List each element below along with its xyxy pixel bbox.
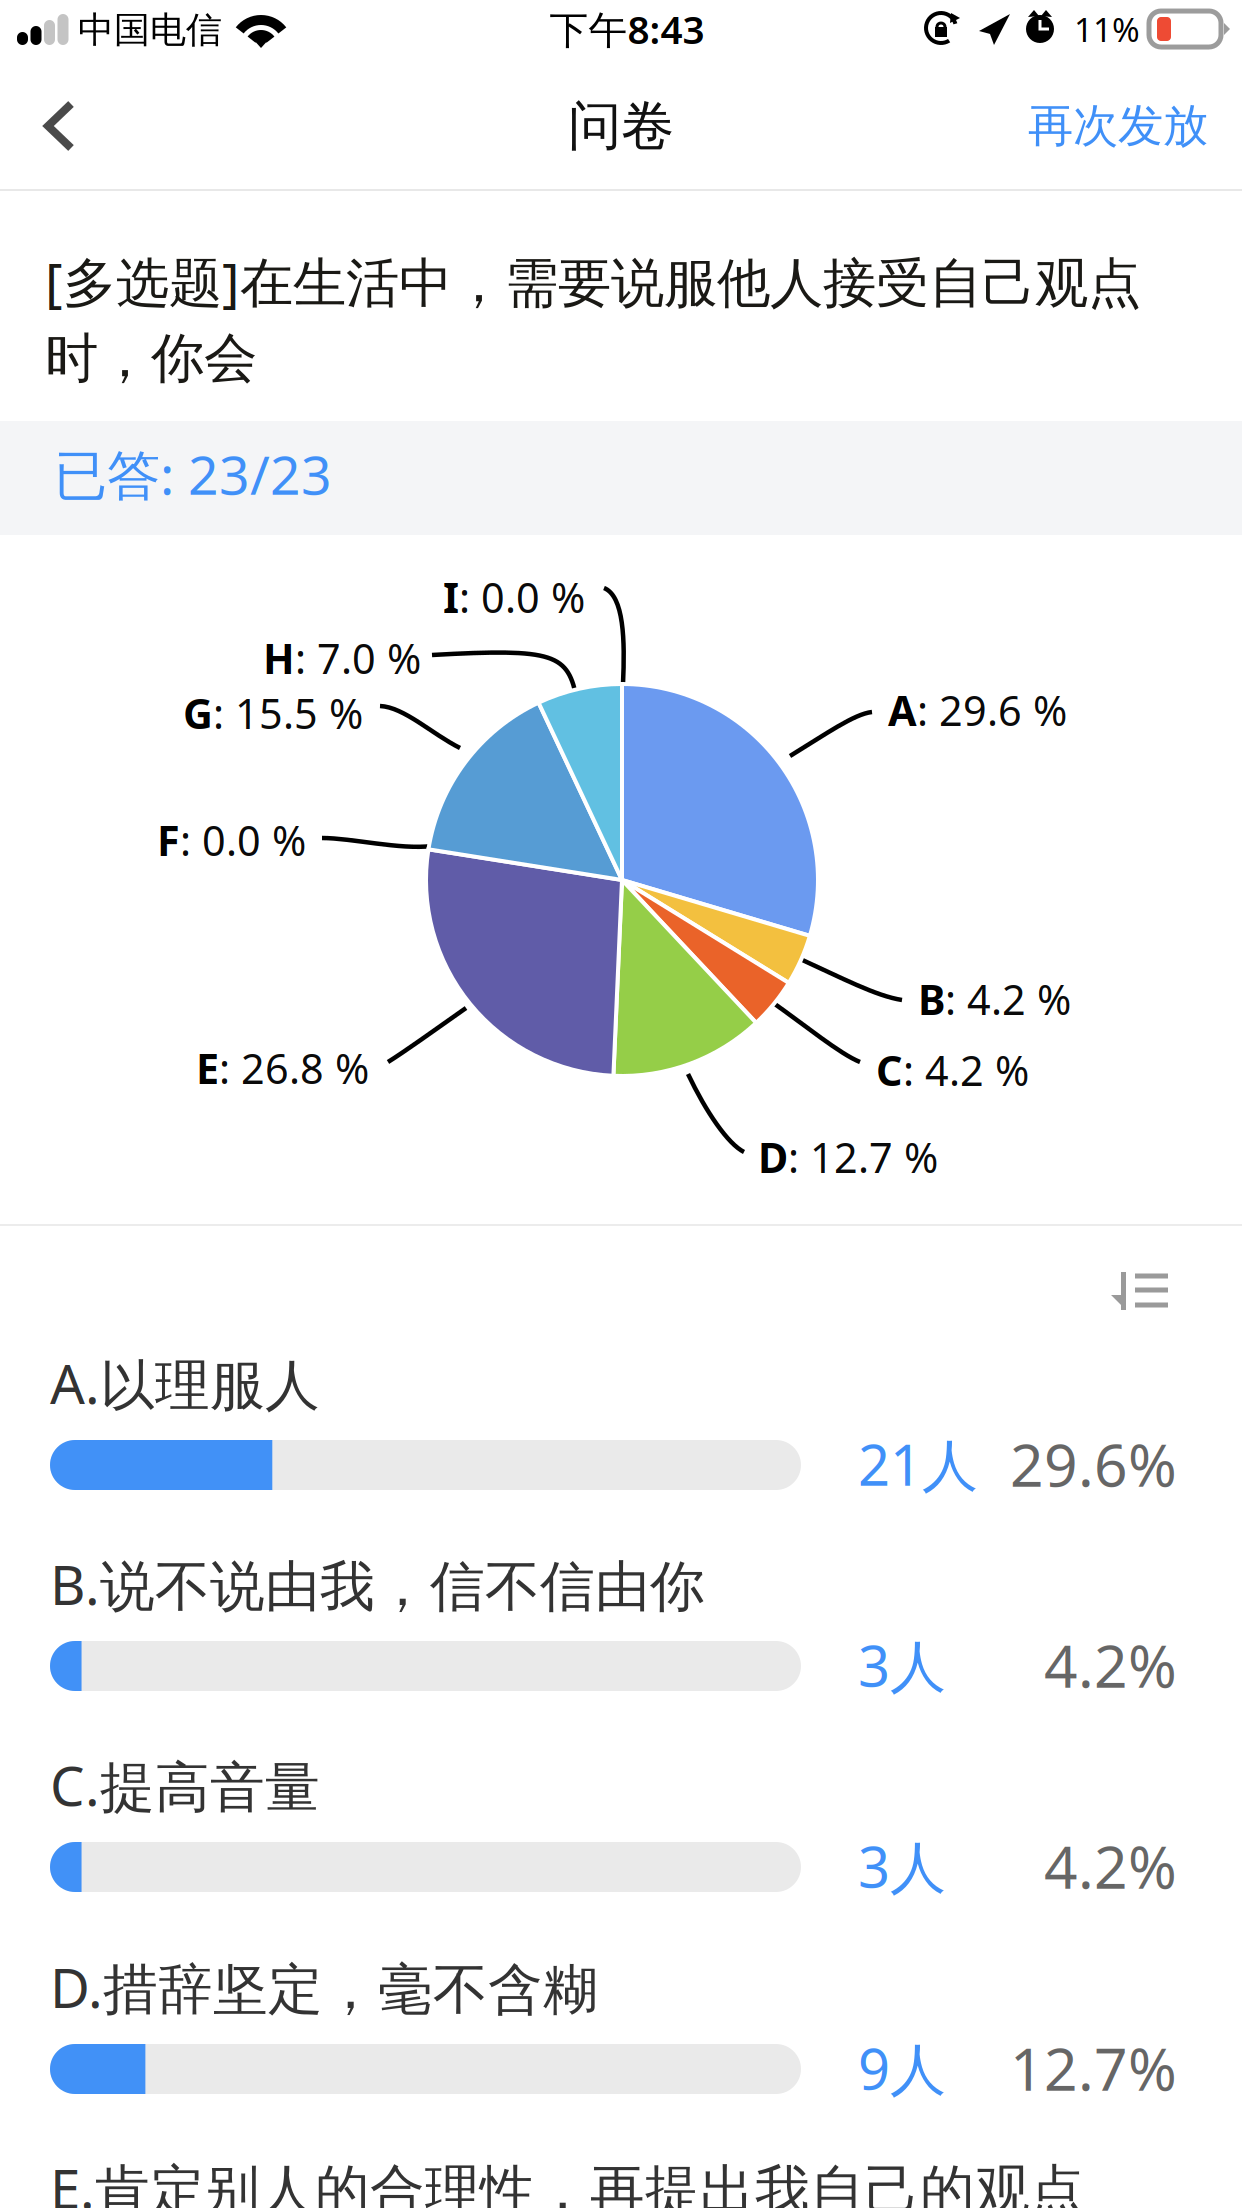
staticText: B.说不说由我，信不信由你 [50, 1548, 705, 1620]
staticText: 已答: 23/23 [54, 439, 332, 509]
staticText: 3人 [858, 1829, 946, 1903]
staticText: C.提高音量 [50, 1749, 320, 1821]
staticText: 问卷 [568, 93, 674, 159]
button[interactable]: 再次发放 [928, 62, 1208, 190]
staticText: : 7.0 % [295, 631, 421, 685]
staticText: F [157, 813, 180, 867]
staticText: E [196, 1041, 219, 1095]
staticText: 12.7% [1010, 2029, 1177, 2107]
staticText: C [876, 1043, 903, 1097]
staticText: 29.6% [1010, 1425, 1177, 1503]
staticText: A [888, 683, 917, 737]
staticText: 21人 [858, 1427, 978, 1501]
staticText: : 0.0 % [180, 813, 306, 867]
staticText: 4.2% [1044, 1626, 1177, 1704]
staticText: : 15.5 % [213, 686, 363, 740]
staticText: D [758, 1130, 788, 1184]
staticText: E.肯定别人的合理性，再提出我自己的观点 [50, 2152, 1085, 2208]
staticText: 4.2% [1044, 1827, 1177, 1905]
staticText: 11% [1074, 7, 1140, 51]
staticText: : 0.0 % [459, 570, 585, 624]
staticText: : 12.7 % [788, 1130, 938, 1184]
staticText: : 4.2 % [903, 1043, 1029, 1097]
staticText: : 26.8 % [219, 1041, 369, 1095]
staticText: : 29.6 % [917, 683, 1067, 737]
staticText: 下午8:43 [549, 3, 704, 55]
staticText: A.以理服人 [50, 1347, 320, 1419]
staticText: 3人 [858, 1628, 946, 1702]
staticText: B [918, 972, 945, 1026]
button[interactable]: Sort [1068, 1265, 1208, 1375]
staticText: G [183, 686, 213, 740]
staticText: [多选题]在生活中，需要说服他人接受自己观点时，你会 [45, 246, 1141, 391]
staticText: I [443, 570, 459, 624]
staticText: 中国电信 [78, 8, 222, 52]
staticText: : 4.2 % [945, 972, 1071, 1026]
staticText: D.措辞坚定，毫不含糊 [50, 1951, 598, 2023]
button[interactable]: Back [0, 62, 130, 190]
staticText: H [263, 631, 295, 685]
staticText: 再次发放 [1028, 98, 1208, 154]
button[interactable]: 问卷 [421, 62, 821, 190]
staticText: 9人 [858, 2031, 946, 2105]
